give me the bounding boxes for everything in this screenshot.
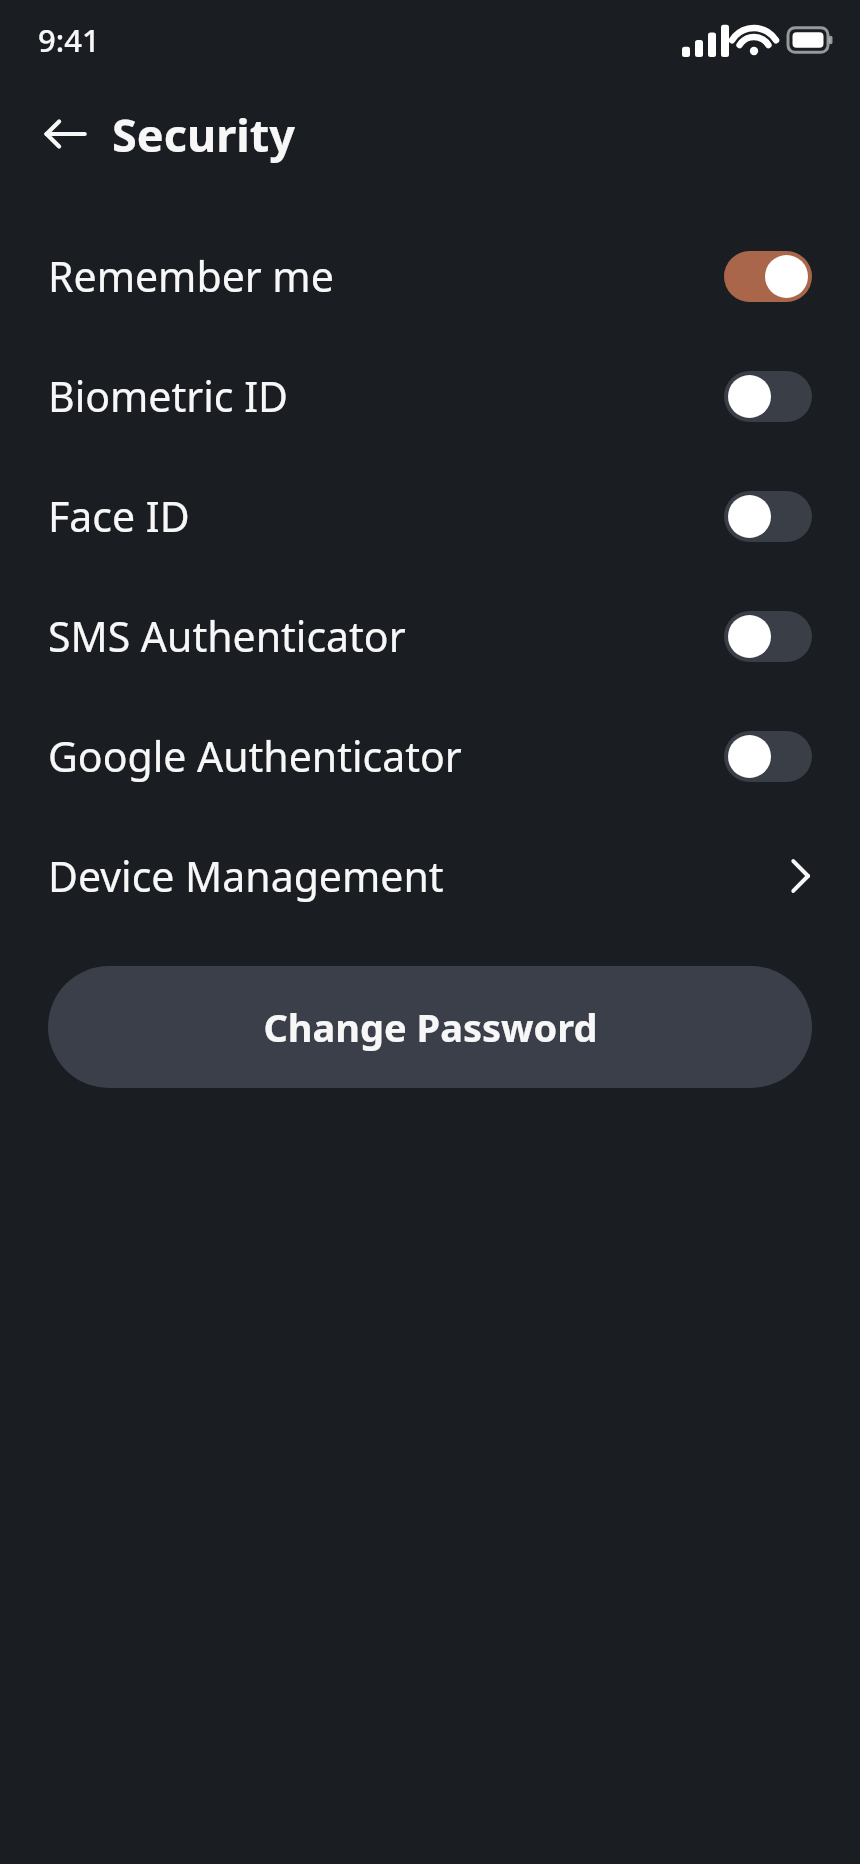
staticText: SMS Authenticator [48, 608, 724, 664]
button[interactable]: Remember me [0, 216, 860, 336]
staticText: 9:41 [38, 19, 100, 61]
button[interactable]: Google Authenticator [0, 696, 860, 816]
button[interactable]: Device Management [0, 816, 860, 936]
staticText: Security [112, 104, 295, 165]
button[interactable]: Biometric ID [0, 336, 860, 456]
staticText: Face ID [48, 488, 724, 544]
staticText: Biometric ID [48, 368, 724, 424]
staticText: Google Authenticator [48, 728, 724, 784]
button[interactable]: Back [30, 99, 100, 169]
button[interactable]: SMS Authenticator [0, 576, 860, 696]
button[interactable]: Face ID [0, 456, 860, 576]
staticText: Remember me [48, 248, 724, 304]
button[interactable]: Change Password [48, 966, 812, 1088]
staticText: Change Password [263, 1001, 598, 1053]
staticText: Device Management [48, 848, 790, 904]
